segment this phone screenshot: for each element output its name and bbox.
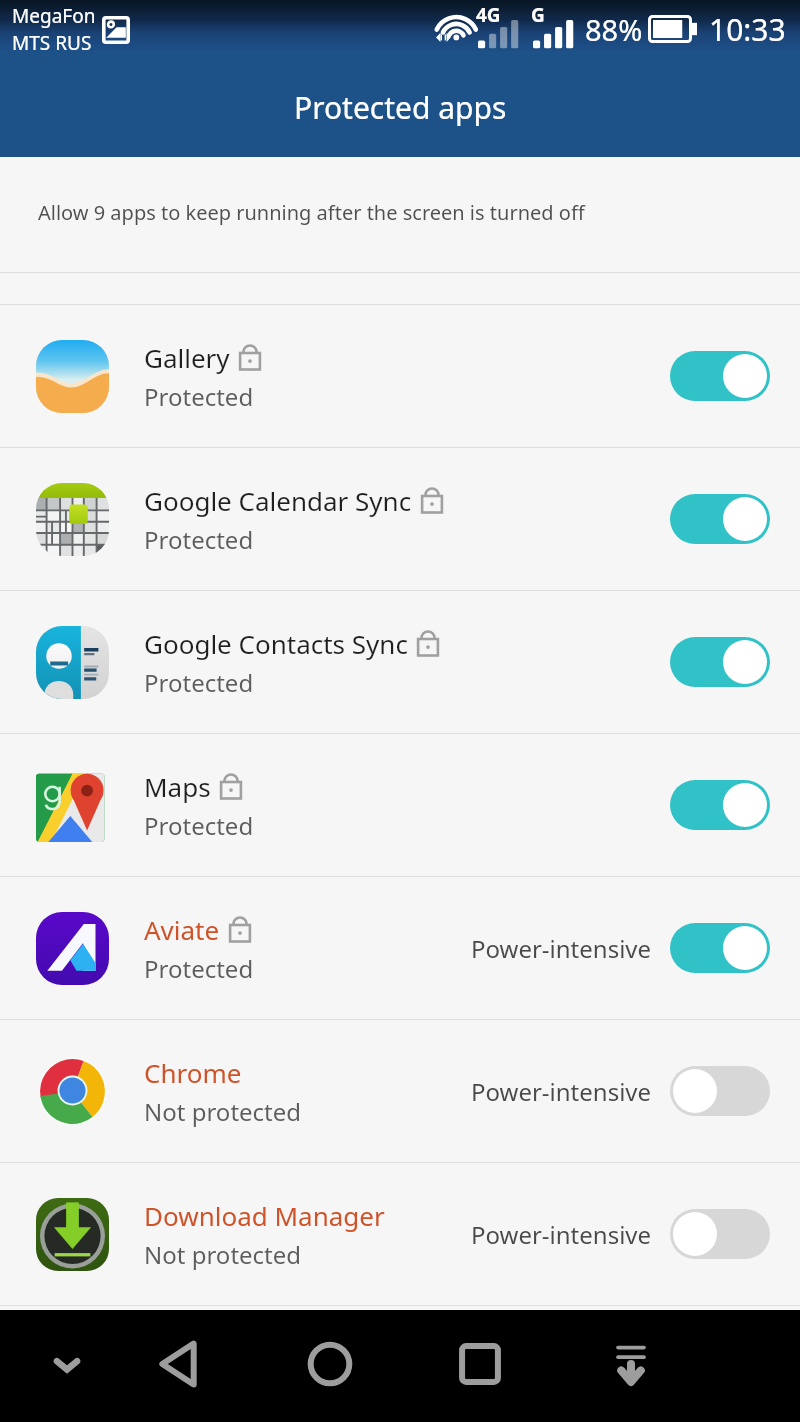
button[interactable]: Maps — [0, 734, 800, 876]
staticText: Power-intensive — [471, 1075, 652, 1108]
staticText: 88% — [585, 10, 643, 49]
button[interactable]: Google Calendar Sync — [0, 448, 800, 590]
button[interactable]: Google Contacts Sync — [0, 591, 800, 733]
staticText: Gallery — [144, 340, 230, 375]
button[interactable]: Enabled — [670, 780, 770, 830]
staticText: Download Manager — [144, 1198, 385, 1233]
staticText: 4G — [476, 2, 501, 28]
staticText: Protected — [144, 666, 254, 699]
staticText: Allow 9 apps to keep running after the s… — [38, 199, 585, 226]
button[interactable]: Enabled — [670, 351, 770, 401]
staticText: MegaFon — [12, 3, 96, 29]
staticText: Power-intensive — [471, 1218, 652, 1251]
staticText: G — [531, 2, 545, 28]
button[interactable]: Hide navigation bar — [0, 1310, 134, 1422]
staticText: Chrome — [144, 1055, 242, 1090]
staticText: Protected — [144, 809, 254, 842]
button[interactable]: Gallery — [0, 305, 800, 447]
button[interactable]: Enabled — [670, 923, 770, 973]
staticText: Protected — [144, 952, 254, 985]
button[interactable]: Home — [254, 1310, 405, 1422]
button[interactable]: Disabled — [670, 1209, 770, 1259]
staticText: Not protected — [144, 1095, 302, 1128]
staticText: Google Contacts Sync — [144, 626, 408, 661]
button[interactable]: Recent apps — [404, 1310, 555, 1422]
staticText: Protected — [144, 380, 254, 413]
staticText: Power-intensive — [471, 932, 652, 965]
button[interactable]: Enabled — [670, 494, 770, 544]
button[interactable]: Enabled — [670, 637, 770, 687]
button[interactable]: Notifications — [555, 1310, 706, 1422]
button[interactable]: Aviate — [0, 877, 800, 1019]
button[interactable]: Disabled — [670, 1066, 770, 1116]
button[interactable]: Back — [99, 1310, 257, 1422]
staticText: Maps — [144, 769, 211, 804]
staticText: MTS RUS — [12, 30, 92, 56]
staticText: Protected apps — [294, 87, 507, 128]
staticText: Aviate — [144, 912, 220, 947]
button[interactable]: Chrome — [0, 1020, 800, 1162]
staticText: Not protected — [144, 1238, 302, 1271]
staticText: Google Calendar Sync — [144, 483, 412, 518]
staticText: 10:33 — [709, 9, 786, 50]
button[interactable]: Download Manager — [0, 1163, 800, 1305]
staticText: Protected — [144, 523, 254, 556]
